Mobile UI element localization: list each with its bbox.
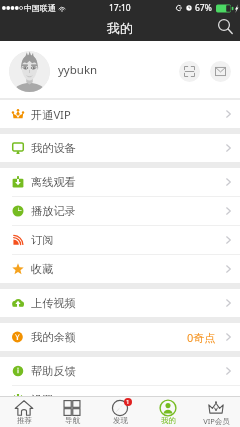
button[interactable]: 播放记录 — [0, 197, 240, 225]
staticText: 推荐 — [17, 416, 32, 425]
button[interactable]: 我的余额 — [0, 323, 240, 351]
button[interactable]: 我的 — [144, 399, 192, 425]
button[interactable]: 导航 — [48, 399, 96, 425]
staticText: 播放记录 — [31, 204, 76, 218]
button[interactable]: 我的设备 — [0, 134, 240, 162]
staticText: 17:10 — [109, 2, 131, 14]
staticText: 0奇点 — [187, 330, 216, 345]
button[interactable]: 离线观看 — [0, 168, 240, 196]
button[interactable]: 帮助反馈 — [0, 357, 240, 385]
staticText: 上传视频 — [31, 296, 76, 310]
staticText: 我的 — [161, 416, 176, 425]
button[interactable]: 设置 — [0, 386, 240, 414]
staticText: 开通VIP — [31, 107, 71, 122]
staticText: 我的 — [107, 20, 133, 36]
button[interactable]: VIP会员 — [192, 399, 240, 426]
staticText: 收藏 — [31, 262, 54, 276]
button[interactable]: Scan QR code — [179, 61, 200, 82]
staticText: 导航 — [65, 416, 80, 425]
button[interactable]: 推荐 — [0, 399, 48, 425]
staticText: 中国联通 — [24, 3, 56, 13]
staticText: 我的余额 — [31, 330, 76, 344]
staticText: 发现 — [113, 416, 128, 425]
button[interactable]: 收藏 — [0, 255, 240, 283]
button[interactable]: yybukn — [0, 41, 240, 98]
staticText: 67% — [195, 2, 212, 14]
button[interactable]: 1 — [96, 399, 144, 425]
staticText: 帮助反馈 — [31, 364, 76, 378]
staticText: 订阅 — [31, 233, 54, 247]
button[interactable]: 订阅 — [0, 226, 240, 254]
button[interactable]: Search — [215, 16, 239, 40]
staticText: 离线观看 — [31, 175, 76, 189]
button[interactable]: Messages — [210, 61, 231, 82]
staticText: yybukn — [58, 62, 98, 78]
button[interactable]: 上传视频 — [0, 289, 240, 317]
staticText: 我的设备 — [31, 141, 76, 155]
button[interactable]: 开通VIP — [0, 100, 240, 128]
staticText: VIP会员 — [203, 416, 230, 426]
staticText: 1 — [126, 398, 130, 406]
staticText: 设置 — [31, 393, 54, 407]
